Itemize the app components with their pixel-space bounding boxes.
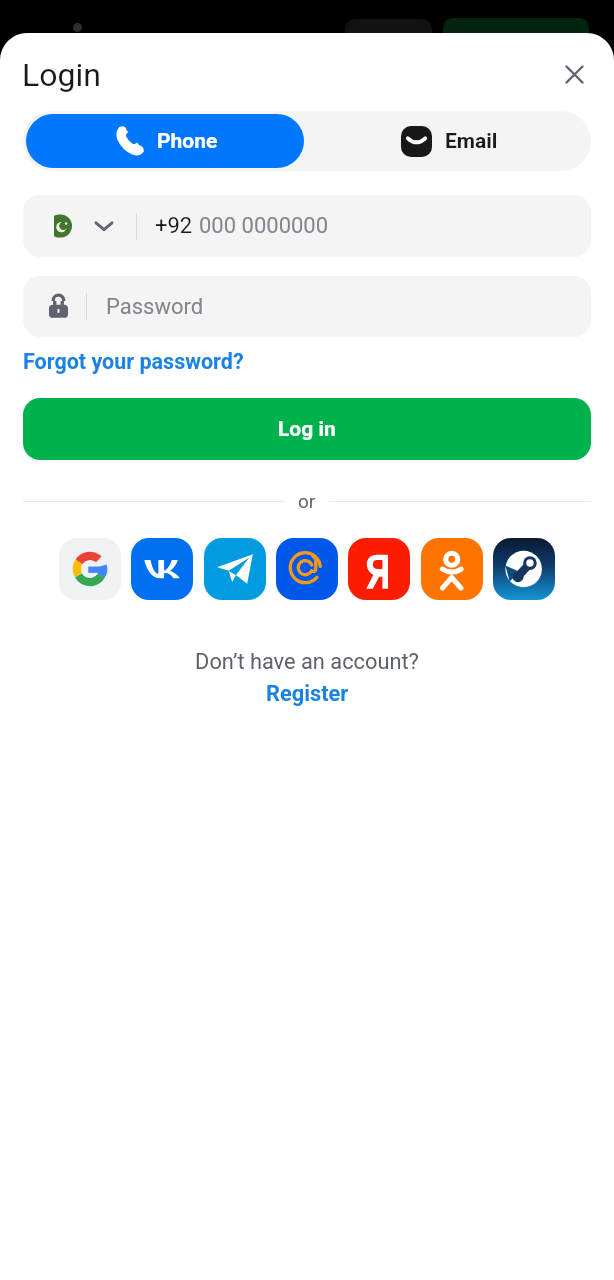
staticText: 000 0000000: [199, 213, 329, 239]
staticText: Register: [266, 681, 349, 707]
staticText: Phone: [157, 129, 218, 154]
button[interactable]: Forgot your password?: [23, 349, 244, 374]
staticText: Password: [106, 294, 204, 320]
button[interactable]: Sign in with Google: [59, 538, 121, 600]
button[interactable]: Phone: [26, 114, 304, 168]
staticText: Log in: [278, 417, 336, 442]
button[interactable]: Log in: [23, 398, 591, 460]
staticText: +92: [155, 213, 193, 239]
button[interactable]: Register: [266, 681, 349, 707]
button[interactable]: Sign in with Yandex: [348, 538, 410, 600]
staticText: or: [298, 490, 316, 512]
button[interactable]: +92: [23, 195, 591, 257]
staticText: Forgot your password?: [23, 349, 244, 374]
button[interactable]: Sign in with Telegram: [204, 538, 266, 600]
button[interactable]: Password: [23, 276, 591, 337]
button[interactable]: Sign in with Mail.ru: [276, 538, 338, 600]
staticText: Email: [445, 129, 498, 154]
button[interactable]: Email: [307, 111, 591, 171]
button[interactable]: Sign in with Steam: [493, 538, 555, 600]
button[interactable]: Sign in with VK: [131, 538, 193, 600]
button[interactable]: Sign in with Odnoklassniki: [421, 538, 483, 600]
staticText: Don’t have an account?: [195, 649, 419, 675]
staticText: Login: [22, 56, 101, 94]
button[interactable]: Close: [554, 54, 594, 94]
